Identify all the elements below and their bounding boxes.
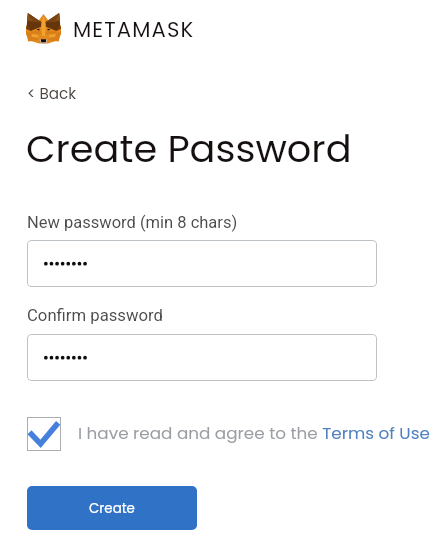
staticText: METAMASK [73, 15, 195, 45]
staticText: < Back [27, 83, 77, 104]
button[interactable]: MetaMask [26, 12, 61, 47]
staticText: New password (min 8 chars) [27, 213, 238, 232]
button[interactable]: Create [27, 486, 197, 530]
staticText: Confirm password [27, 306, 163, 326]
button[interactable]: Password input [27, 240, 377, 287]
button[interactable]: Password input [27, 334, 377, 381]
staticText: Create Password [26, 122, 352, 176]
button[interactable]: < Back [20, 78, 84, 109]
button[interactable]: Agree to Terms of Use [27, 417, 61, 451]
staticText: Create [89, 499, 135, 518]
button[interactable]: I have read and agree to the Terms of Us… [78, 421, 430, 445]
